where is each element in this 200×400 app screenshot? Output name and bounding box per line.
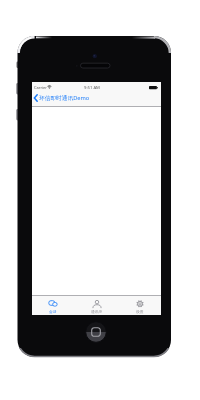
button[interactable]: 环信即时通讯Demo [32,90,90,106]
staticText: Carrier [34,85,48,90]
staticText: 9:51 AM [84,85,100,91]
button[interactable]: 会话 [32,295,75,315]
staticText: 设置 [136,309,144,314]
button[interactable]: 通讯录 [75,295,118,315]
button[interactable]: 设置 [118,295,161,315]
staticText: 环信即时通讯Demo [39,94,90,102]
staticText: 会话 [49,309,57,314]
staticText: 通讯录 [91,309,103,314]
